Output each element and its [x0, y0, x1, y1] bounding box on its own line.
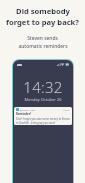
button[interactable]: Steven app icon — [14, 107, 72, 125]
staticText: forget to pay back? — [6, 17, 79, 27]
staticText: Reminder! — [16, 112, 31, 116]
staticText: automatic reminders — [18, 43, 68, 50]
staticText: Steven • now — [20, 108, 36, 111]
staticText: 14:32 — [63, 108, 70, 111]
staticText: Don't forget you owe some money to Steve… — [16, 117, 70, 124]
button[interactable]: Signal, Wi-Fi and battery — [13, 60, 73, 183]
other: Signal, Wi-Fi and battery — [57, 63, 69, 66]
staticText: Monday October 26 — [24, 97, 62, 102]
other: Steven app icon — [16, 108, 19, 111]
staticText: 14:32 — [23, 77, 63, 97]
staticText: Did somebody — [16, 6, 70, 16]
staticText: Steven sends — [27, 35, 58, 42]
